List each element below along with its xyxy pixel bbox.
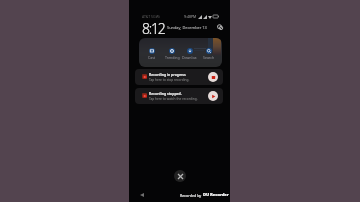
staticText: 9:48PM [184,14,197,19]
button[interactable]: Cast [144,48,160,60]
button[interactable]: Downloads [182,48,198,60]
staticText: Trending [165,55,180,60]
staticText: Cast [148,55,156,60]
staticText: AT&T 5GWi [142,14,160,19]
button[interactable]: Settings [216,23,224,31]
button[interactable]: Recording stopped. [135,88,223,104]
staticText: Search [203,55,215,60]
button[interactable]: Close [174,170,186,182]
button[interactable]: Recording in progress [135,69,223,85]
staticText: Downloads [182,55,198,60]
staticText: Recording stopped. [149,91,182,96]
staticText: DU Recorder [203,192,229,198]
staticText: Recorded by [180,193,202,198]
staticText: Sunday, December 13 [167,25,207,30]
staticText: 8:12 [142,19,165,34]
button[interactable]: Stop recording [208,72,218,82]
staticText: Tap here to watch the recording. [149,97,198,101]
button[interactable]: Play recording [208,91,218,101]
button[interactable]: Back [138,191,145,198]
button[interactable]: Search [201,48,217,60]
staticText: Tap here to stop recording. [149,78,190,82]
button[interactable]: Cast [139,38,222,67]
staticText: Recording in progress [149,72,186,77]
button[interactable]: Trending [164,48,180,60]
